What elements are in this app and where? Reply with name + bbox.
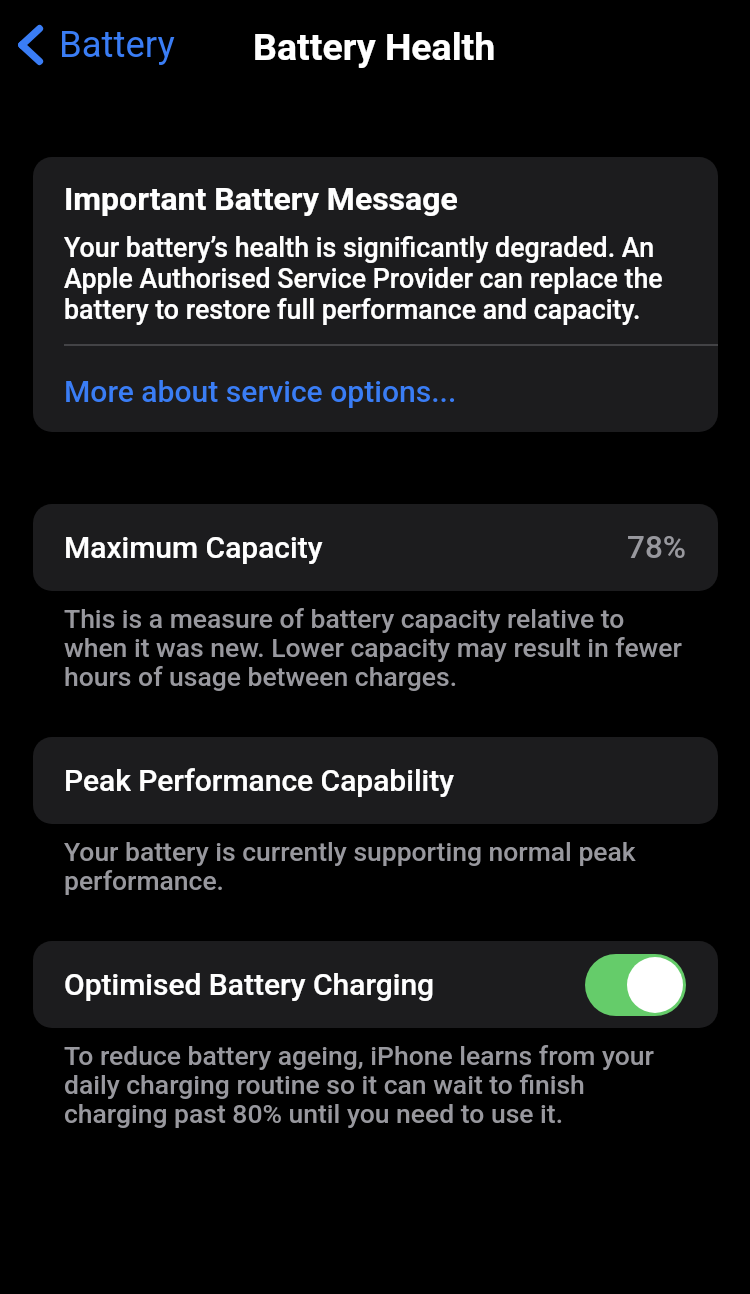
staticText: 78% [627, 529, 687, 566]
staticText: More about service options... [64, 374, 457, 409]
staticText: Battery Health [253, 25, 496, 69]
staticText: Maximum Capacity [64, 530, 323, 565]
staticText: To reduce battery ageing, iPhone learns … [64, 1042, 682, 1129]
button[interactable]: More about service options... [33, 346, 718, 432]
staticText: Your battery’s health is significantly d… [64, 232, 691, 325]
staticText: Important Battery Message [64, 180, 458, 218]
button[interactable]: Peak Performance Capability [33, 737, 718, 824]
staticText: Optimised Battery Charging [64, 967, 435, 1002]
staticText: Battery [59, 23, 175, 66]
button[interactable]: Optimised Battery Charging, on [585, 954, 686, 1016]
staticText: Peak Performance Capability [64, 763, 454, 798]
staticText: Your battery is currently supporting nor… [64, 838, 682, 896]
staticText: This is a measure of battery capacity re… [64, 605, 682, 692]
button[interactable]: Back to Battery [12, 18, 181, 71]
button[interactable]: Maximum Capacity [33, 504, 718, 591]
